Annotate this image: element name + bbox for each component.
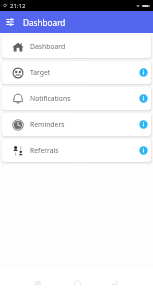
staticText: Target	[30, 68, 51, 77]
staticText: Dashboard	[23, 17, 66, 28]
staticText: 21:12	[10, 2, 26, 10]
button[interactable]: Open navigation menu	[2, 14, 18, 30]
staticText: Dashboard	[30, 42, 66, 51]
button[interactable]: Notifications	[2, 87, 151, 110]
button[interactable]: Info	[139, 146, 148, 155]
staticText: Notifications	[30, 94, 71, 103]
button[interactable]: Target	[2, 61, 151, 84]
staticText: Referrals	[30, 146, 59, 155]
button[interactable]: Reminders	[2, 113, 151, 136]
button[interactable]: Info	[139, 94, 148, 103]
button[interactable]: Info	[139, 120, 148, 129]
button[interactable]: Home	[67, 273, 87, 293]
button[interactable]: Back	[105, 273, 125, 293]
button[interactable]: Info	[139, 68, 148, 77]
button[interactable]: Dashboard	[2, 35, 151, 58]
staticText: Reminders	[30, 120, 65, 129]
button[interactable]: Recent apps	[28, 273, 48, 293]
button[interactable]: Referrals	[2, 139, 151, 162]
